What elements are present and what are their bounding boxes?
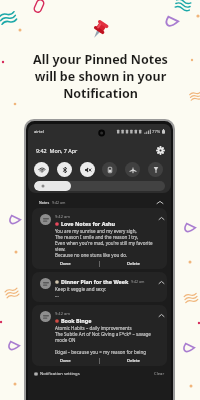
button[interactable]: Clear	[154, 371, 165, 377]
staticText: Dinner Plan for the Week	[61, 278, 129, 285]
staticText: 77%	[152, 129, 161, 135]
staticText: Done	[60, 261, 71, 267]
staticText: All your Pinned Notes will be shown in y…	[33, 51, 168, 102]
button[interactable]: Mute	[80, 162, 95, 177]
button[interactable]: Dinner Plan for the Week	[32, 272, 167, 302]
button[interactable]: Notification settings	[34, 371, 80, 377]
staticText: 9:42 am	[55, 214, 70, 219]
button[interactable]: Bluetooth	[57, 162, 72, 177]
button[interactable]: Collapse	[156, 199, 163, 206]
button[interactable]: Wi-Fi	[34, 162, 49, 177]
button[interactable]: Screen record	[102, 162, 117, 177]
staticText: Because no one stuns like you do.	[55, 252, 128, 258]
button[interactable]: Flashlight	[148, 162, 163, 177]
staticText: view.	[55, 246, 66, 252]
staticText: Even when you're mad, you're still my fa…	[55, 240, 153, 246]
button[interactable]: Expand	[158, 312, 164, 318]
staticText: Notification settings	[40, 371, 80, 377]
staticText: Notes	[39, 200, 50, 205]
staticText: 9:42 Mon, 7 Apr	[36, 147, 78, 154]
staticText: 9:42 am	[131, 279, 145, 284]
staticText: mode ON	[55, 337, 76, 343]
staticText: Atomic Habits – daily improvements	[55, 325, 132, 331]
staticText: airtel	[34, 129, 44, 134]
staticText: The reason I smile and the reason I try,	[55, 234, 139, 240]
button[interactable]: Done	[32, 258, 99, 269]
button[interactable]: Done	[32, 355, 99, 366]
staticText: Done	[60, 358, 71, 364]
button[interactable]: Expand	[158, 279, 164, 285]
button[interactable]: Settings	[156, 146, 165, 155]
staticText: Delete	[127, 358, 141, 364]
staticText: Keep it veggie and sexy:	[55, 286, 107, 292]
staticText: Clear	[154, 371, 165, 377]
staticText: 9:42 am	[55, 311, 70, 316]
staticText: Book Binge	[61, 317, 92, 324]
button[interactable]: Expand	[158, 215, 164, 221]
staticText: Delete	[127, 261, 141, 267]
staticText: Love Notes for Ashu	[61, 220, 116, 227]
button[interactable]: Airplane mode	[125, 162, 140, 177]
button[interactable]: Delete	[100, 258, 167, 269]
button[interactable]: Delete	[100, 355, 167, 366]
button[interactable]: 9:42 am	[32, 208, 167, 269]
button[interactable]: Brightness	[34, 181, 165, 191]
staticText: ...	[55, 292, 59, 298]
staticText: The Subtle Art of Not Giving a F*ck* – s…	[55, 331, 151, 337]
button[interactable]: 9:42 am	[32, 305, 167, 366]
staticText: You are my sunrise and my every sigh,	[55, 228, 137, 234]
staticText: Ikigai – because you = my reason for bei…	[55, 349, 147, 355]
staticText: 9:42 am	[52, 200, 66, 205]
